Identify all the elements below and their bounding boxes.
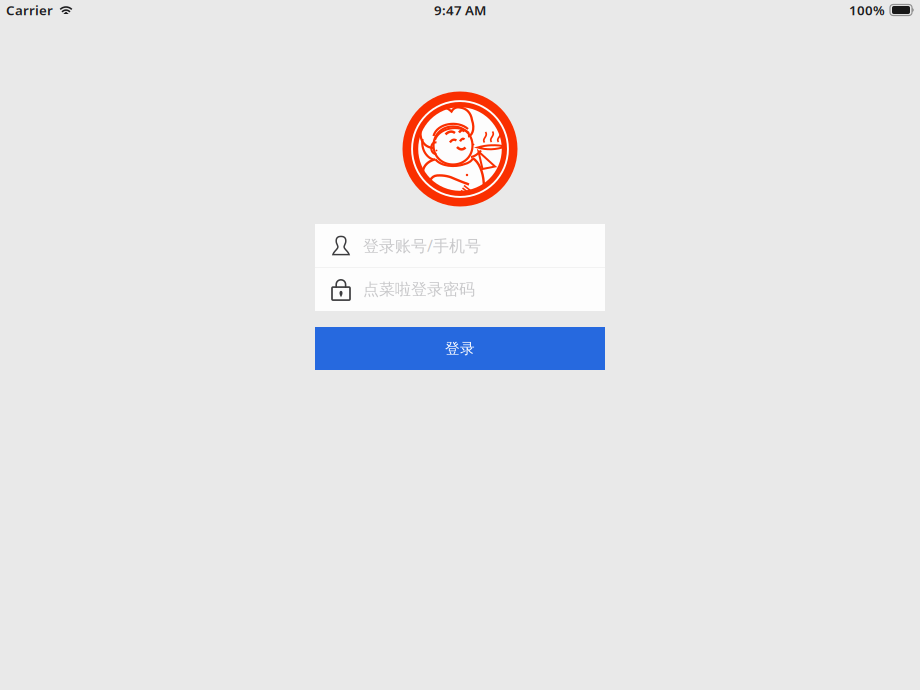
button[interactable]: 登录: [315, 327, 605, 370]
button[interactable]: 点菜啦登录密码: [315, 268, 605, 311]
staticText: 登录账号/手机号: [363, 235, 481, 256]
staticText: 登录: [445, 339, 475, 357]
button[interactable]: 登录账号/手机号: [315, 224, 605, 267]
staticText: 100%: [849, 1, 885, 19]
staticText: 点菜啦登录密码: [363, 280, 475, 299]
staticText: Carrier: [6, 1, 53, 19]
staticText: 9:47 AM: [434, 1, 486, 19]
